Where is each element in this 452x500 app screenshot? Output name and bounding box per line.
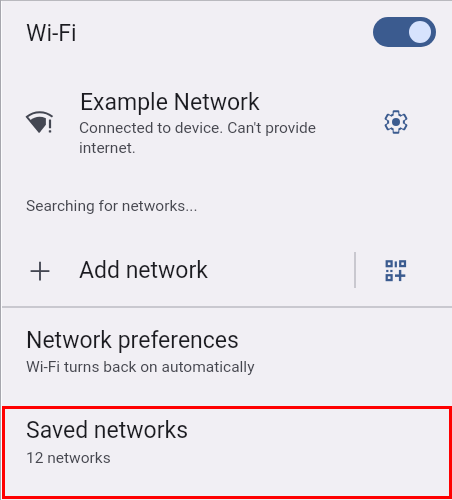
staticText: Network preferences [26,327,239,354]
staticText: Add network [79,257,208,284]
staticText: Wi‑Fi [26,20,77,47]
button[interactable]: Wi‑Fi [0,0,452,72]
staticText: Connected to device. Can't provide inter… [79,119,316,156]
staticText: 12 networks [26,449,111,467]
staticText: Searching for networks... [26,197,198,215]
button[interactable]: Add network [0,240,452,302]
staticText: Saved networks [26,417,189,444]
button[interactable]: Saved networks [0,406,452,497]
button[interactable]: Network preferences [0,306,452,406]
button[interactable]: Wi-Fi on [373,17,436,47]
staticText: Example Network [80,89,260,116]
button[interactable]: Example Network [0,72,452,172]
staticText: Wi-Fi turns back on automatically [26,358,255,376]
button[interactable]: Scan QR code to add network [372,247,420,295]
button[interactable]: Network details settings [372,98,419,145]
